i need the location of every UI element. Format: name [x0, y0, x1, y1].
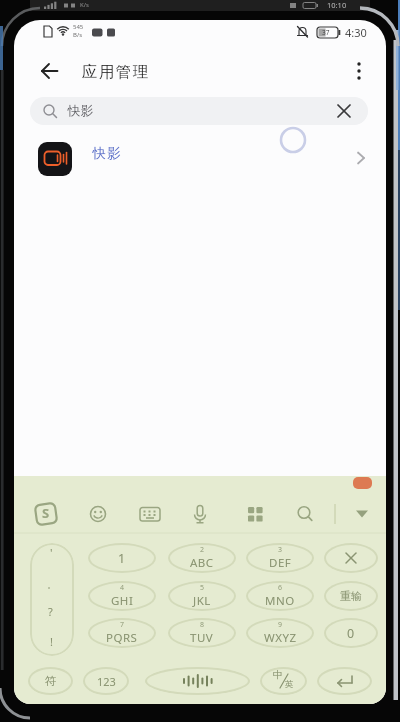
staticText: 8: [200, 620, 205, 630]
button[interactable]: [14, 134, 386, 184]
button[interactable]: 8: [168, 618, 236, 648]
staticText: 。: [47, 579, 56, 590]
staticText: MNO: [265, 593, 295, 609]
button[interactable]: 重输: [324, 581, 378, 611]
staticText: 快影: [67, 103, 94, 119]
button[interactable]: 9: [246, 618, 314, 648]
staticText: 符: [45, 674, 57, 688]
staticText: 快影: [92, 145, 121, 162]
staticText: 9: [278, 620, 283, 630]
staticText: 6: [278, 583, 283, 593]
staticText: 4:30: [345, 25, 367, 40]
button[interactable]: 2: [168, 543, 236, 573]
button[interactable]: 123: [83, 667, 129, 695]
button[interactable]: 0: [324, 618, 378, 648]
staticText: !: [50, 634, 53, 649]
button[interactable]: 7: [88, 618, 156, 648]
button[interactable]: [30, 97, 368, 125]
staticText: S: [42, 504, 50, 522]
staticText: ABC: [190, 555, 214, 571]
staticText: WXYZ: [264, 630, 297, 646]
button[interactable]: [349, 58, 371, 84]
staticText: ?: [48, 604, 53, 619]
button[interactable]: 5: [168, 581, 236, 611]
staticText: K/s: [80, 1, 89, 9]
button[interactable]: 3: [246, 543, 314, 573]
staticText: 10:10: [327, 0, 347, 10]
button[interactable]: [145, 667, 250, 695]
staticText: 3: [278, 545, 283, 555]
staticText: 5: [200, 583, 205, 593]
staticText: JKL: [193, 593, 211, 609]
staticText: 123: [97, 674, 116, 689]
button[interactable]: 4: [88, 581, 156, 611]
staticText: 37: [322, 28, 330, 37]
staticText: ': [50, 545, 53, 560]
button[interactable]: 符: [28, 667, 73, 695]
button[interactable]: [34, 58, 64, 84]
staticText: 中: [273, 668, 283, 681]
staticText: 7: [120, 620, 125, 630]
staticText: 1: [118, 550, 126, 567]
button[interactable]: 中: [260, 667, 307, 695]
staticText: GHI: [111, 593, 134, 609]
button[interactable]: ': [30, 543, 74, 656]
staticText: 应用管理: [81, 62, 149, 82]
staticText: PQRS: [106, 630, 138, 646]
staticText: 重输: [340, 589, 362, 603]
staticText: 2: [200, 545, 205, 555]
staticText: TUV: [190, 630, 214, 646]
staticText: 545 B/s: [73, 23, 84, 39]
button[interactable]: 1: [88, 543, 156, 573]
staticText: 英: [285, 679, 294, 690]
staticText: 0: [347, 625, 355, 642]
button[interactable]: 6: [246, 581, 314, 611]
staticText: 4: [120, 583, 125, 593]
button[interactable]: [317, 667, 372, 695]
staticText: DEF: [269, 555, 292, 571]
button[interactable]: [324, 543, 378, 573]
